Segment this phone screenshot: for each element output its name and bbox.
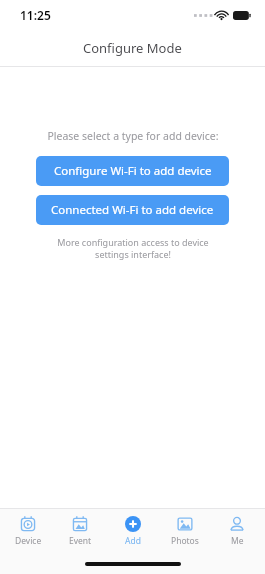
button[interactable]: Photos xyxy=(161,516,209,547)
staticText: Event xyxy=(69,535,92,547)
button[interactable]: Add xyxy=(109,516,157,547)
staticText: Photos xyxy=(171,535,199,547)
staticText: Please select a type for add device: xyxy=(47,129,219,143)
staticText: 11:25 xyxy=(20,7,51,23)
staticText: More configuration access to device sett… xyxy=(44,236,222,261)
staticText: Add xyxy=(125,535,141,547)
button[interactable]: Device xyxy=(4,516,52,547)
button[interactable]: Me xyxy=(213,516,261,547)
button[interactable]: Connected Wi-Fi to add device xyxy=(36,195,229,225)
staticText: Configure Mode xyxy=(83,39,182,57)
staticText: Device xyxy=(15,535,42,547)
staticText: Me xyxy=(231,535,244,547)
button[interactable]: Configure Wi-Fi to add device xyxy=(36,156,229,186)
staticText: Configure Wi-Fi to add device xyxy=(54,163,212,179)
button[interactable]: Event xyxy=(56,516,104,547)
staticText: Connected Wi-Fi to add device xyxy=(51,202,214,218)
